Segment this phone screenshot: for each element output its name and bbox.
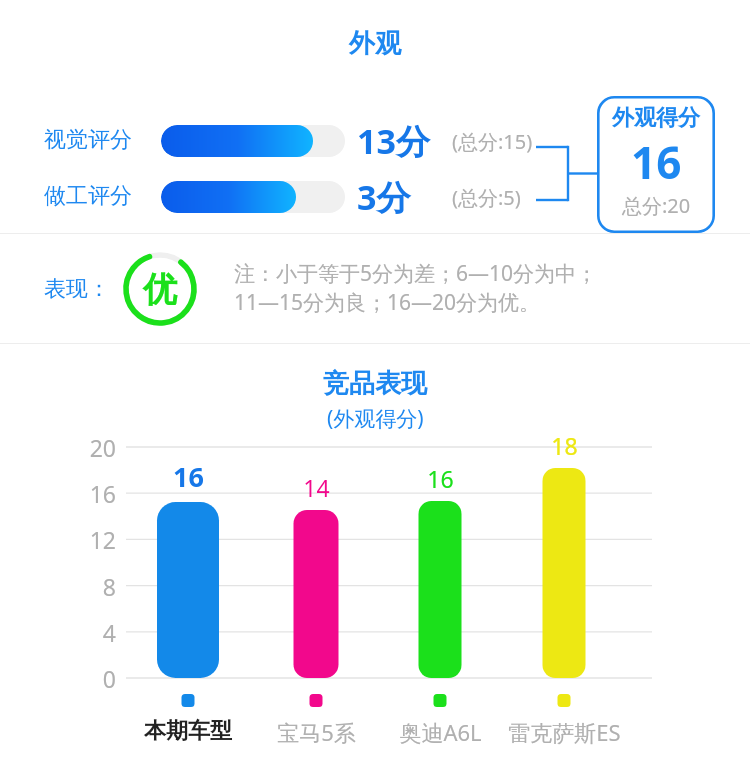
button[interactable]: 表现 优 <box>121 250 199 328</box>
staticText: 20 <box>89 432 116 463</box>
staticText: 16 <box>631 132 682 192</box>
staticText: 竞品表现 <box>323 367 427 400</box>
staticText: 0 <box>102 663 116 694</box>
staticText: 12 <box>89 524 116 555</box>
staticText: 宝马5系 <box>277 717 356 747</box>
button[interactable]: 宝马5系 <box>246 717 386 747</box>
staticText: 优 <box>143 268 177 311</box>
staticText: 视觉评分 <box>44 126 132 154</box>
staticText: 3分 <box>357 174 411 220</box>
staticText: 总分:20 <box>622 192 691 219</box>
staticText: 8 <box>102 571 116 602</box>
button[interactable]: 雷克萨斯ES <box>494 717 634 747</box>
staticText: (总分:5) <box>452 184 521 211</box>
staticText: 注：小于等于5分为差；6—10分为中； <box>234 259 598 288</box>
staticText: 16 <box>173 458 204 495</box>
button[interactable]: 本期车型 <box>118 717 258 745</box>
staticText: 做工评分 <box>44 182 132 210</box>
staticText: 奥迪A6L <box>399 717 482 747</box>
staticText: 本期车型 <box>144 717 232 745</box>
staticText: 4 <box>102 617 116 648</box>
staticText: 16 <box>427 463 454 494</box>
staticText: 13分 <box>357 118 430 164</box>
staticText: (外观得分) <box>327 404 424 433</box>
button[interactable]: 奥迪A6L <box>370 717 510 747</box>
staticText: 11—15分为良；16—20分为优。 <box>234 288 541 317</box>
staticText: 表现： <box>44 275 110 303</box>
button[interactable]: 视觉评分 13分 <box>161 125 345 157</box>
staticText: 16 <box>89 478 116 509</box>
staticText: 18 <box>551 430 578 461</box>
staticText: 14 <box>303 472 330 503</box>
staticText: (总分:15) <box>452 128 533 155</box>
staticText: 外观 <box>349 27 401 60</box>
button[interactable]: 做工评分 3分 <box>161 181 345 213</box>
button[interactable]: 外观得分 16 总分 20 <box>597 96 715 233</box>
staticText: 雷克萨斯ES <box>508 717 621 747</box>
staticText: 外观得分 <box>612 104 700 132</box>
